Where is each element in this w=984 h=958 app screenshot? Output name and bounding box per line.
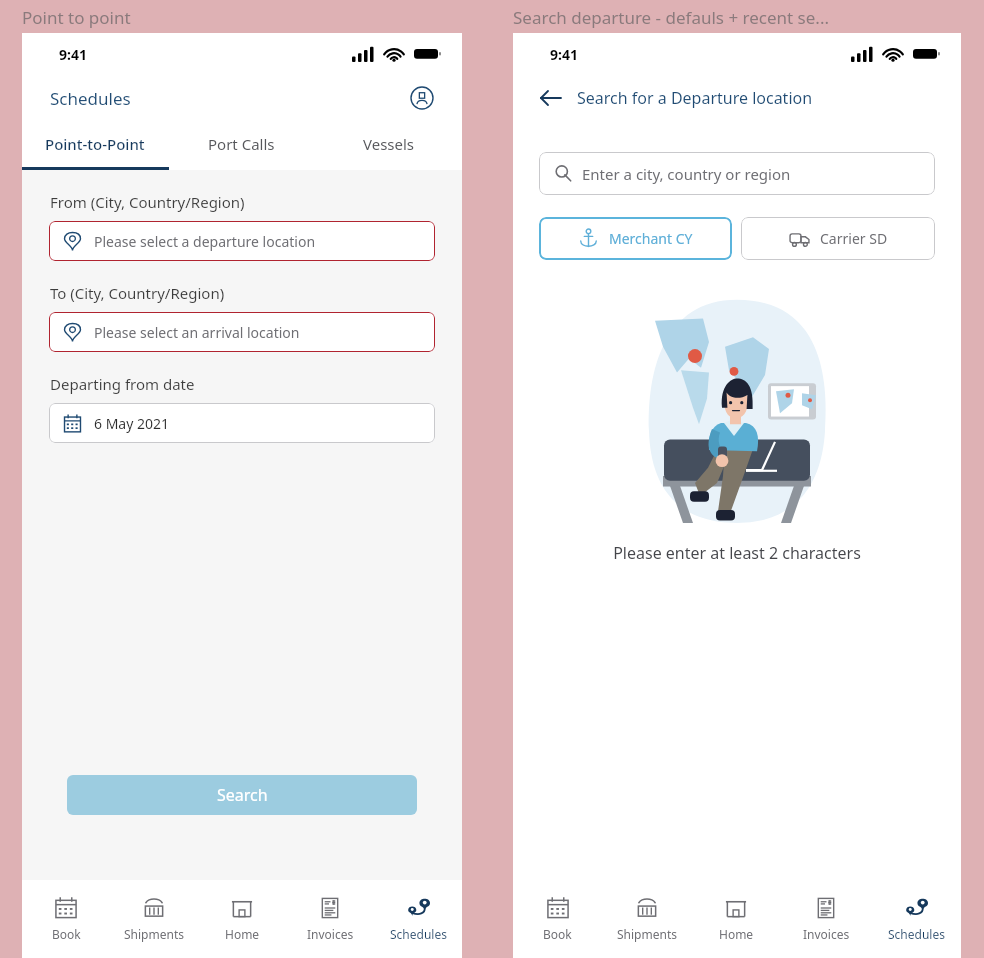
staticText: 9:41: [550, 45, 578, 64]
staticText: Port Calls: [208, 134, 275, 154]
staticText: Invoices: [307, 926, 354, 942]
button[interactable]: Shipments: [602, 880, 691, 958]
staticText: Search departure - defauls + recent se..…: [513, 6, 830, 29]
staticText: Please enter at least 2 characters: [513, 542, 961, 564]
staticText: Shipments: [124, 926, 184, 942]
staticText: Please select a departure location: [94, 232, 316, 251]
button[interactable]: Schedules: [871, 880, 961, 958]
button[interactable]: Book: [22, 880, 110, 958]
staticText: Search: [217, 784, 268, 806]
staticText: Home: [719, 926, 754, 942]
staticText: Merchant CY: [609, 229, 693, 248]
staticText: 6 May 2021: [94, 414, 170, 433]
staticText: 9:41: [59, 45, 87, 64]
staticText: Home: [225, 926, 260, 942]
button[interactable]: Vessels: [315, 121, 462, 167]
button[interactable]: Carrier SD: [741, 217, 935, 260]
staticText: Point to point: [22, 6, 131, 29]
button[interactable]: 6 May 2021: [49, 403, 435, 443]
button[interactable]: Back: [535, 82, 567, 114]
staticText: Vessels: [363, 134, 415, 154]
button[interactable]: Invoices: [286, 880, 374, 958]
button[interactable]: Merchant CY: [539, 217, 732, 260]
staticText: Invoices: [803, 926, 850, 942]
button[interactable]: Port Calls: [168, 121, 315, 167]
staticText: Please select an arrival location: [94, 323, 300, 342]
staticText: Book: [52, 926, 81, 942]
button[interactable]: Please select an arrival location: [49, 312, 435, 352]
button[interactable]: Home: [198, 880, 286, 958]
button[interactable]: Account: [406, 82, 438, 114]
staticText: Book: [543, 926, 572, 942]
staticText: Schedules: [50, 87, 131, 110]
button[interactable]: Book: [513, 880, 602, 958]
button[interactable]: Please select a departure location: [49, 221, 435, 261]
staticText: Carrier SD: [820, 229, 888, 248]
staticText: Departing from date: [50, 374, 195, 394]
staticText: To (City, Country/Region): [50, 283, 225, 303]
button[interactable]: Schedules: [374, 880, 462, 958]
staticText: Enter a city, country or region: [582, 164, 791, 184]
button[interactable]: Shipments: [110, 880, 198, 958]
staticText: Search for a Departure location: [577, 87, 813, 109]
button[interactable]: Point-to-Point: [22, 121, 168, 167]
button[interactable]: Home: [691, 880, 781, 958]
staticText: Schedules: [390, 926, 447, 942]
button[interactable]: Invoices: [781, 880, 871, 958]
staticText: From (City, Country/Region): [50, 192, 245, 212]
button[interactable]: Search: [67, 775, 417, 815]
staticText: Point-to-Point: [45, 134, 145, 154]
staticText: Shipments: [617, 926, 677, 942]
button[interactable]: Enter a city, country or region: [539, 152, 935, 195]
staticText: Schedules: [888, 926, 945, 942]
